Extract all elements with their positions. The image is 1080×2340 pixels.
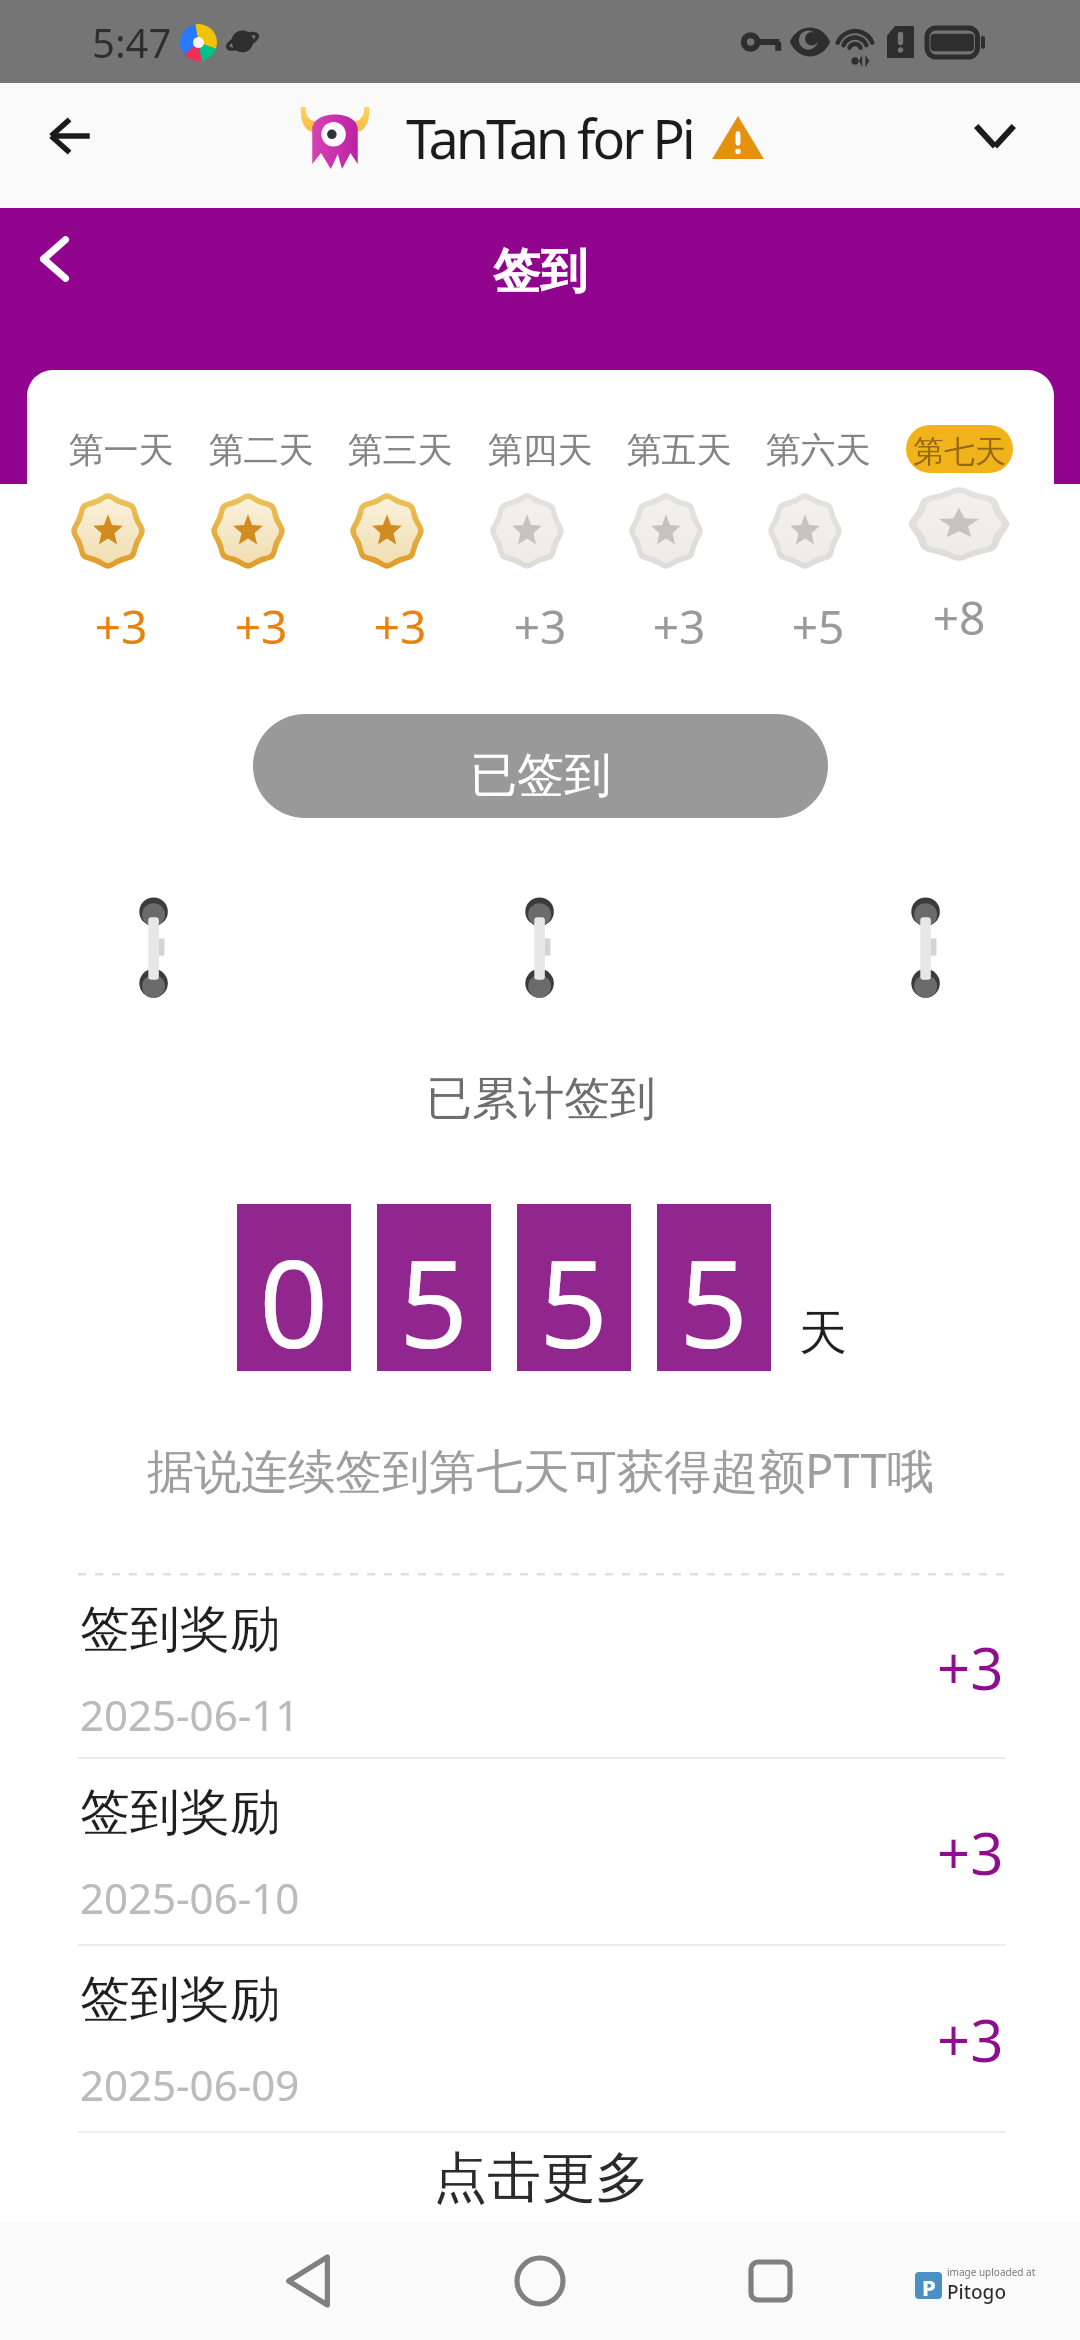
button[interactable]: 签到奖励: [27, 1574, 1054, 1757]
staticText: 2025-06-09: [80, 2056, 300, 2113]
staticText: 第四天: [450, 428, 630, 472]
staticText: 2025-06-10: [80, 1869, 300, 1926]
staticText: +3: [310, 595, 490, 658]
staticText: 5: [399, 1219, 469, 1384]
staticText: +8: [869, 586, 1049, 649]
button[interactable]: 签到奖励: [27, 1944, 1054, 2131]
staticText: +3: [450, 595, 630, 658]
staticText: 点击更多: [433, 2144, 649, 2212]
button[interactable]: Home: [495, 2236, 585, 2326]
staticText: +3: [937, 2000, 1004, 2079]
button[interactable]: Back: [20, 224, 90, 294]
staticText: 0: [259, 1219, 329, 1384]
staticText: 第五天: [589, 428, 769, 472]
staticText: P: [922, 2272, 936, 2299]
staticText: 签到: [493, 242, 587, 301]
button[interactable]: Recents: [725, 2236, 815, 2326]
staticText: image uploaded at: [947, 2265, 1036, 2279]
staticText: +3: [937, 1813, 1004, 1892]
staticText: TanTan for Pi: [406, 101, 693, 175]
staticText: +3: [589, 595, 769, 658]
staticText: 签到奖励: [80, 1598, 280, 1661]
staticText: +3: [937, 1628, 1004, 1707]
button[interactable]: 点击更多: [27, 2133, 1054, 2223]
staticText: 2025-06-11: [80, 1686, 300, 1743]
button[interactable]: 签到奖励: [27, 1757, 1054, 1944]
button[interactable]: Back: [263, 2236, 353, 2326]
button[interactable]: Expand: [952, 93, 1038, 179]
staticText: 签到奖励: [80, 1781, 280, 1844]
staticText: 已累计签到: [426, 1070, 656, 1128]
button[interactable]: Back: [27, 93, 113, 179]
staticText: 第二天: [171, 428, 351, 472]
staticText: 第一天: [31, 428, 211, 472]
staticText: 5:47: [92, 15, 172, 69]
staticText: 已签到: [470, 746, 611, 805]
staticText: +3: [31, 595, 211, 658]
staticText: 天: [799, 1303, 847, 1363]
staticText: 第三天: [310, 428, 490, 472]
staticText: +5: [728, 595, 908, 658]
staticText: 据说连续签到第七天可获得超额PTT哦: [147, 1438, 934, 1502]
staticText: 第七天: [913, 432, 1006, 471]
staticText: 签到奖励: [80, 1968, 280, 2031]
staticText: 5: [679, 1219, 749, 1384]
staticText: +3: [171, 595, 351, 658]
staticText: Pitogo: [947, 2279, 1006, 2305]
staticText: 5: [539, 1219, 609, 1384]
button[interactable]: 已签到: [253, 714, 828, 818]
staticText: 第六天: [728, 428, 908, 472]
